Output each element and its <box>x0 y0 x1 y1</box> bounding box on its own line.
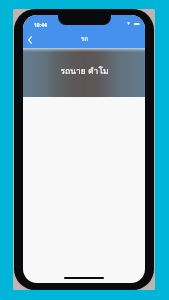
staticText: 10:44 <box>34 22 47 29</box>
staticText: รถนาย คำโม <box>60 64 109 78</box>
staticText: รถ <box>81 34 88 44</box>
button[interactable]: Back <box>24 34 36 46</box>
